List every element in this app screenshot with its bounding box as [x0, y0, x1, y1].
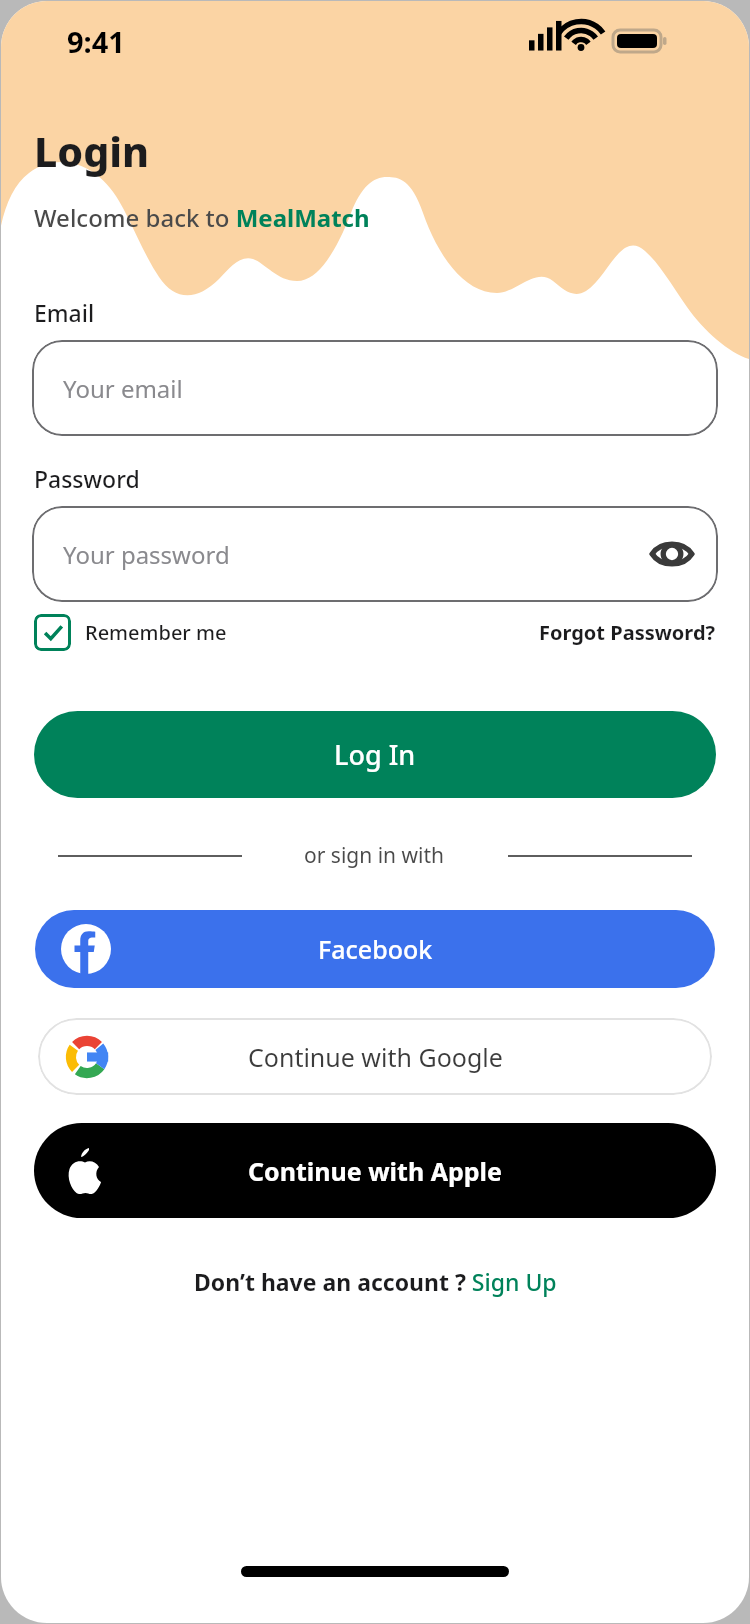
button[interactable]: Log In — [34, 711, 716, 798]
staticText: Your password — [63, 538, 230, 571]
staticText: Facebook — [318, 932, 433, 966]
staticText: Password — [34, 463, 140, 494]
button[interactable]: Show password — [649, 531, 695, 577]
staticText: 9:41 — [67, 22, 125, 61]
staticText: Remember me — [85, 619, 227, 646]
staticText: Login — [34, 123, 150, 179]
staticText: Forgot Password? — [539, 619, 716, 646]
staticText: Welcome back to MealMatch — [34, 201, 370, 234]
button[interactable]: Remember me — [34, 614, 227, 651]
button[interactable]: Facebook — [35, 910, 715, 988]
button[interactable]: Don’t have an account ? Sign Up — [194, 1266, 557, 1297]
staticText: Email — [34, 297, 95, 328]
button[interactable]: Your password — [32, 506, 718, 602]
staticText: or sign in with — [304, 841, 445, 870]
staticText: Continue with Apple — [248, 1154, 502, 1188]
staticText: Don’t have an account ? Sign Up — [194, 1266, 557, 1297]
button[interactable]: Continue with Apple — [34, 1123, 716, 1218]
staticText: Your email — [63, 372, 183, 405]
button[interactable]: Continue with Google — [38, 1018, 712, 1095]
staticText: Log In — [334, 736, 416, 773]
button[interactable]: Forgot Password? — [539, 619, 716, 646]
staticText: Continue with Google — [248, 1040, 503, 1074]
button[interactable]: Your email — [32, 340, 718, 436]
